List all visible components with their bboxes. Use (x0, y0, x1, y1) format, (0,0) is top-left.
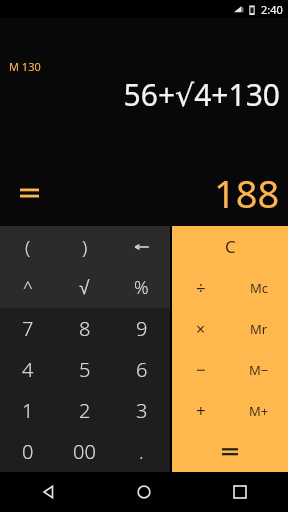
staticText: Mc (250, 279, 269, 297)
button[interactable]: ^ (0, 267, 56, 308)
button[interactable]: Back (0, 472, 96, 512)
button[interactable]: × (172, 308, 230, 349)
staticText: ( (25, 234, 31, 260)
staticText: % (134, 275, 149, 300)
button[interactable]: ) (56, 226, 113, 267)
staticText: M+ (249, 402, 269, 420)
button[interactable]: Backspace (113, 226, 170, 267)
staticText: − (196, 358, 206, 381)
button[interactable]: Home (96, 472, 192, 512)
staticText: √ (79, 277, 90, 298)
staticText: 7 (22, 315, 34, 342)
button[interactable]: 5 (56, 349, 113, 390)
staticText: C (225, 235, 236, 258)
button[interactable] (172, 431, 288, 472)
button[interactable]: + (172, 390, 230, 431)
staticText: 6 (136, 356, 148, 383)
staticText: 0 (22, 438, 34, 465)
staticText: ÷ (196, 276, 206, 299)
button[interactable]: Mc (230, 267, 288, 308)
button[interactable]: Mr (230, 308, 288, 349)
staticText: 3 (136, 397, 148, 424)
staticText: . (139, 439, 144, 465)
button[interactable]: 9 (113, 308, 170, 349)
staticText: 2 (79, 397, 91, 424)
staticText: ^ (23, 276, 33, 299)
button[interactable]: 2 (56, 390, 113, 431)
button[interactable]: 6 (113, 349, 170, 390)
button[interactable]: 0 (0, 431, 56, 472)
staticText: Mr (250, 320, 268, 338)
button[interactable]: M− (230, 349, 288, 390)
button[interactable]: − (172, 349, 230, 390)
staticText: 8 (79, 315, 91, 342)
staticText: 5 (79, 356, 91, 383)
button[interactable]: 00 (56, 431, 113, 472)
button[interactable]: C (172, 226, 288, 267)
button[interactable]: M+ (230, 390, 288, 431)
button[interactable]: 1 (0, 390, 56, 431)
button[interactable]: 3 (113, 390, 170, 431)
button[interactable]: ( (0, 226, 56, 267)
button[interactable]: ÷ (172, 267, 230, 308)
button[interactable]: Recents (192, 472, 288, 512)
staticText: × (196, 318, 206, 340)
staticText: M− (249, 361, 269, 379)
staticText: 00 (73, 438, 96, 465)
staticText: 2:40 (261, 2, 283, 17)
staticText: 4 (22, 356, 34, 383)
staticText: M 130 (9, 59, 41, 74)
staticText: ) (82, 234, 88, 260)
button[interactable]: 4 (0, 349, 56, 390)
button[interactable]: 7 (0, 308, 56, 349)
staticText: 188 (214, 167, 280, 219)
button[interactable]: % (113, 267, 170, 308)
staticText: 1 (22, 397, 34, 424)
button[interactable]: √ (56, 267, 113, 308)
button[interactable]: . (113, 431, 170, 472)
staticText: 56+√4+130 (123, 74, 280, 115)
staticText: + (196, 399, 206, 422)
staticText: 9 (136, 315, 148, 342)
button[interactable]: 8 (56, 308, 113, 349)
